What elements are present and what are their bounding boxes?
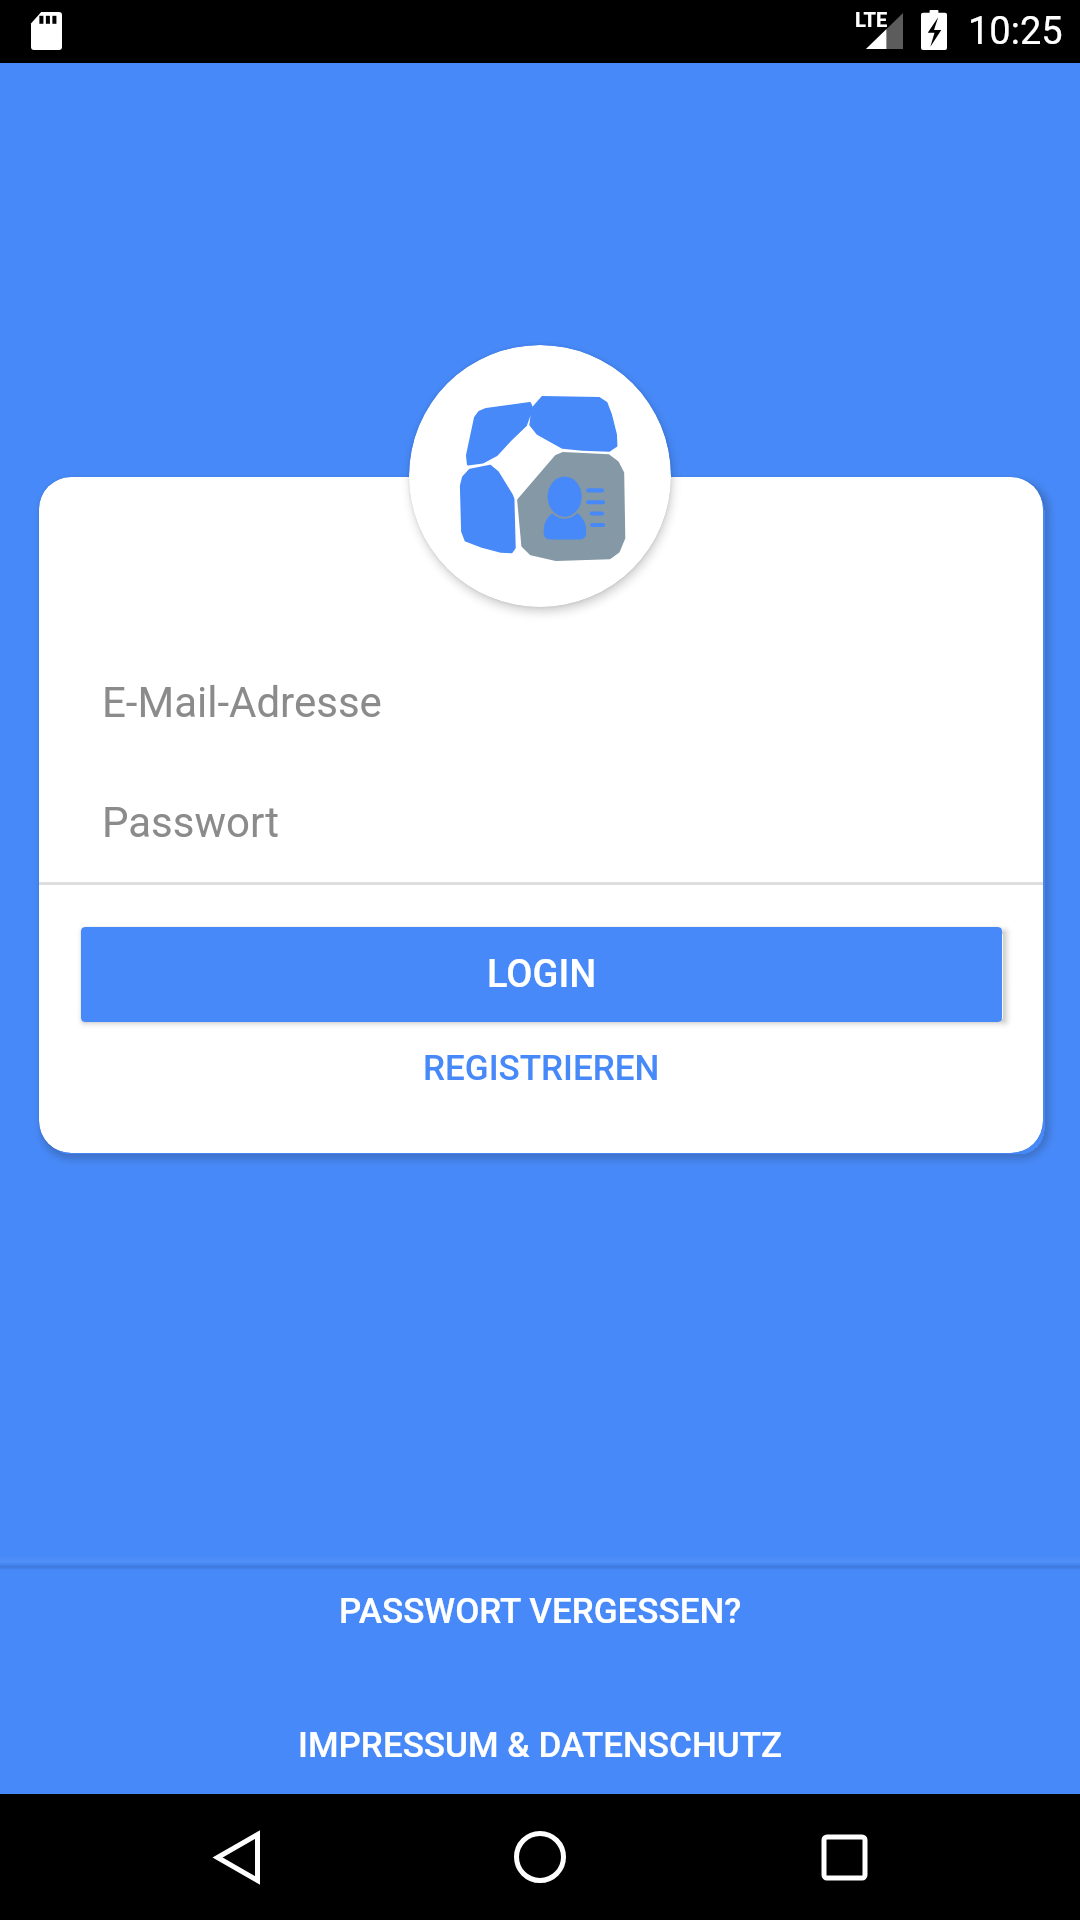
staticText: LTE — [855, 8, 888, 31]
staticText: 10:25 — [968, 9, 1063, 54]
button[interactable]: Home — [483, 1802, 597, 1912]
button[interactable]: E-Mail-Adresse — [39, 642, 1043, 762]
button[interactable]: LOGIN — [81, 927, 1002, 1022]
staticText: PASSWORT VERGESSEN? — [339, 1591, 742, 1632]
staticText: REGISTRIEREN — [423, 1048, 660, 1089]
staticText: Passwort — [102, 798, 279, 847]
button[interactable]: IMPRESSUM & DATENSCHUTZ — [0, 1697, 1080, 1793]
staticText: IMPRESSUM & DATENSCHUTZ — [298, 1725, 783, 1766]
staticText: E-Mail-Adresse — [102, 678, 382, 727]
button[interactable]: Passwort — [39, 762, 1043, 882]
button[interactable]: REGISTRIEREN — [39, 1024, 1043, 1112]
button[interactable]: Recents — [787, 1802, 901, 1912]
staticText: LOGIN — [487, 952, 597, 997]
button[interactable]: Back — [180, 1802, 294, 1912]
button[interactable]: PASSWORT VERGESSEN? — [0, 1563, 1080, 1659]
